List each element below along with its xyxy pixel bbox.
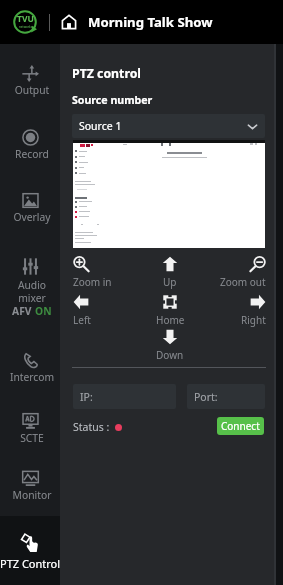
staticText: IP: <box>80 390 93 404</box>
button[interactable]: Overlay <box>0 181 60 274</box>
button[interactable]: Home <box>62 15 76 29</box>
button[interactable]: Camera preview <box>73 140 265 248</box>
button[interactable]: Intercom <box>0 341 60 434</box>
staticText: Port: <box>194 390 218 404</box>
button[interactable]: Left <box>73 294 137 327</box>
staticText: Source 1 <box>79 119 122 133</box>
staticText: Morning Talk Show <box>88 13 213 31</box>
staticText: ON <box>35 304 52 318</box>
button[interactable]: Connect <box>217 417 264 435</box>
button[interactable]: Port: <box>187 384 265 409</box>
button[interactable]: IP: <box>73 384 176 409</box>
button[interactable]: Record <box>0 118 60 211</box>
button[interactable]: Home <box>138 294 202 327</box>
button[interactable]: Monitor <box>0 460 60 553</box>
staticText: Left <box>73 313 91 327</box>
staticText: networks <box>19 25 33 29</box>
staticText: mixer <box>2 291 62 305</box>
button[interactable]: Output <box>0 55 60 148</box>
staticText: Overlay <box>2 210 62 224</box>
button[interactable]: SCTE <box>0 402 60 495</box>
staticText: Up <box>163 275 177 289</box>
staticText: Source number <box>72 93 153 107</box>
staticText: Connect <box>221 419 260 433</box>
staticText: TVU <box>17 13 34 25</box>
staticText: Zoom out <box>220 275 266 289</box>
staticText: AFV <box>12 304 35 318</box>
staticText: Record <box>2 147 62 161</box>
button[interactable]: Down <box>138 329 202 362</box>
button[interactable]: Zoom out <box>202 256 266 289</box>
button[interactable]: Up <box>138 256 202 289</box>
button[interactable]: PTZ Control <box>0 516 62 585</box>
staticText: Home <box>156 313 185 327</box>
button[interactable]: Right <box>202 294 266 327</box>
staticText: Down <box>156 348 184 362</box>
staticText: Zoom in <box>73 275 112 289</box>
staticText: PTZ control <box>72 65 142 82</box>
staticText: Intercom <box>2 370 62 384</box>
staticText: SCTE <box>2 431 62 445</box>
staticText: Output <box>2 83 62 97</box>
button[interactable]: Audio <box>0 248 60 336</box>
button[interactable]: Zoom in <box>73 256 137 289</box>
button[interactable]: TVU Networks <box>13 10 37 34</box>
staticText: PTZ Control <box>0 556 70 571</box>
button[interactable]: Source 1 <box>72 114 265 138</box>
staticText: Status : <box>73 420 110 434</box>
staticText: Audio <box>2 278 62 292</box>
staticText: Monitor <box>2 488 62 502</box>
staticText: Right <box>241 313 266 327</box>
